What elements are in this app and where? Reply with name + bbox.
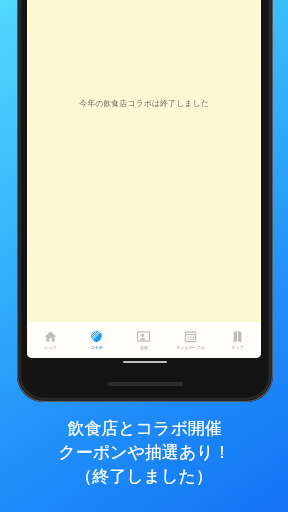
button[interactable]: 企画: [120, 322, 167, 358]
staticText: タイムテーブル: [176, 345, 205, 350]
staticText: コラボ: [90, 345, 103, 350]
staticText: 今年の飲食店コラボは終了しました: [79, 98, 209, 108]
staticText: 飲食店とコラボ開催: [67, 418, 222, 439]
button[interactable]: トップ: [27, 322, 73, 358]
staticText: クーポンや抽選あり！: [58, 442, 231, 463]
button[interactable]: コラボ: [73, 322, 120, 358]
staticText: トップ: [44, 345, 57, 350]
staticText: マップ: [231, 345, 244, 350]
staticText: （終了しました）: [75, 466, 213, 487]
button[interactable]: タイムテーブル: [167, 322, 214, 358]
staticText: 企画: [140, 345, 148, 350]
button[interactable]: マップ: [214, 322, 261, 358]
